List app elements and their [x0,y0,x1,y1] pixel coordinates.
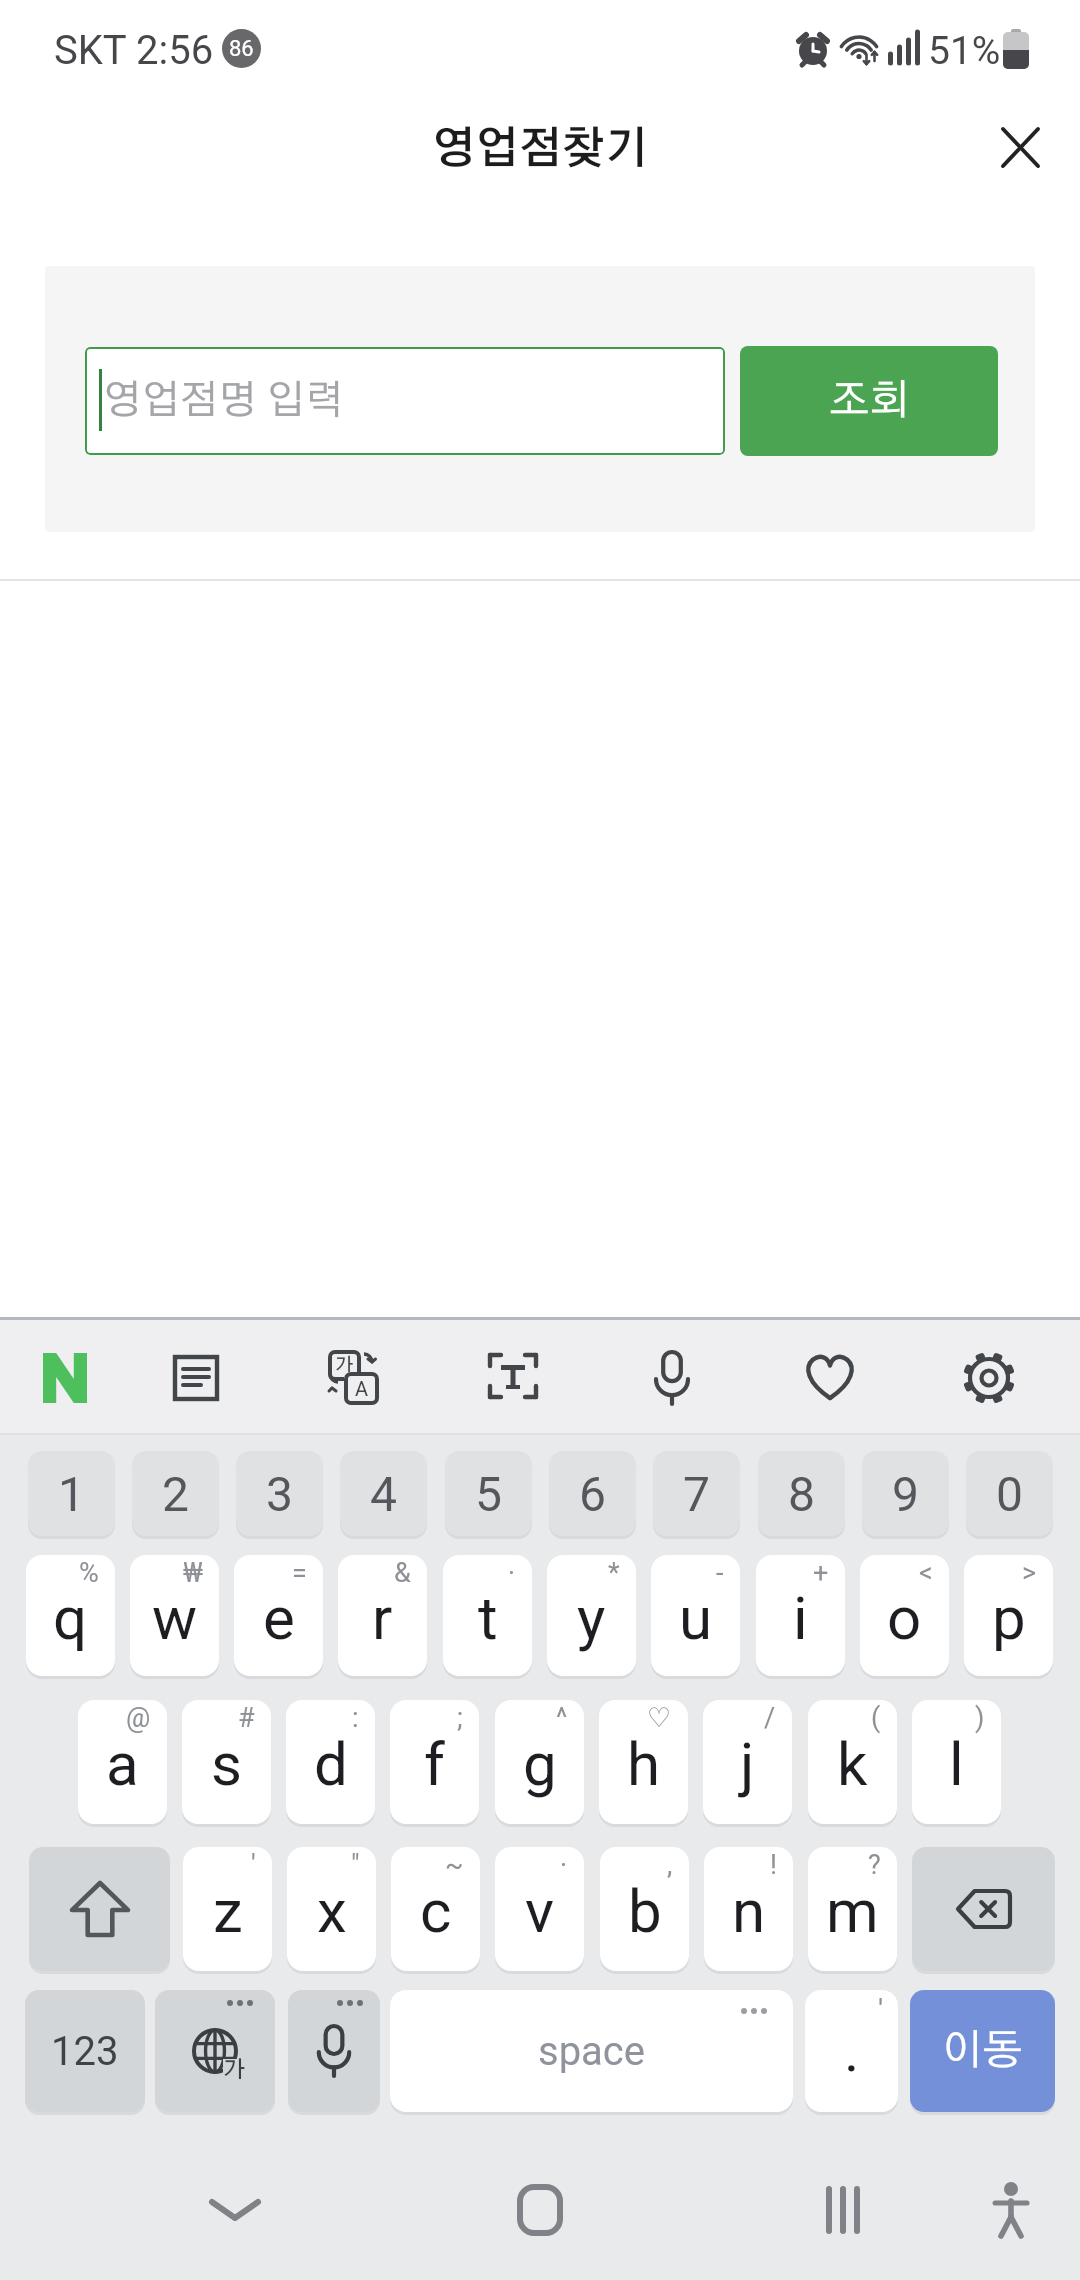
button[interactable]: 영업점명 입력 [85,347,725,455]
staticText: 영업점찾기 [432,128,649,172]
button[interactable] [29,1847,170,1971]
button[interactable]: n [704,1847,793,1971]
staticText: ' [251,1849,256,1881]
button[interactable]: 3 [236,1451,323,1536]
staticText: k [837,1729,868,1799]
button[interactable] [497,2175,583,2245]
button[interactable]: d [286,1700,375,1824]
staticText: 5 [475,1466,502,1522]
button[interactable]: x [287,1847,376,1971]
staticText: d [314,1729,348,1799]
staticText: = [292,1557,307,1589]
staticText: > [1022,1557,1037,1589]
staticText: e [263,1583,295,1653]
button[interactable]: c [391,1847,480,1971]
staticText: v [525,1876,555,1946]
button[interactable]: 2 [132,1451,219,1536]
button[interactable]: z [183,1847,272,1971]
button[interactable]: i [756,1555,845,1676]
staticText: # [238,1702,255,1734]
button[interactable] [985,112,1057,184]
staticText: p [992,1583,1026,1653]
button[interactable] [165,1347,227,1409]
button[interactable]: 조회 [740,346,998,456]
button[interactable]: 가 [155,1990,275,2112]
staticText: o [887,1583,922,1653]
button[interactable]: y [547,1555,636,1676]
button[interactable]: t [443,1555,532,1676]
button[interactable] [288,1990,380,2112]
button[interactable]: 6 [549,1451,636,1536]
staticText: SKT [54,27,127,74]
button[interactable]: v [495,1847,584,1971]
button[interactable]: 9 [862,1451,949,1536]
staticText: g [523,1729,557,1799]
staticText: 4 [370,1466,397,1522]
staticText: , [667,1849,673,1881]
button[interactable]: b [600,1847,689,1971]
staticText: & [394,1557,411,1589]
staticText: ; [457,1702,463,1734]
staticText: space [538,2028,646,2075]
button[interactable] [799,1347,861,1409]
staticText: c [420,1876,452,1946]
button[interactable]: m [808,1847,897,1971]
button[interactable]: a [78,1700,167,1824]
staticText: 7 [683,1466,710,1522]
button[interactable]: 1 [28,1451,115,1536]
button[interactable]: e [234,1555,323,1676]
staticText: 123 [51,2028,119,2075]
button[interactable]: k [808,1700,897,1824]
button[interactable]: 7 [653,1451,740,1536]
button[interactable]: l [912,1700,1001,1824]
staticText: 가 [335,1356,354,1375]
button[interactable] [192,2180,278,2240]
button[interactable] [482,1347,544,1409]
staticText: u [679,1583,713,1653]
button[interactable] [34,1347,96,1409]
button[interactable]: o [860,1555,949,1676]
staticText: - [716,1557,724,1589]
button[interactable]: q [26,1555,115,1676]
staticText: 86 [229,36,254,62]
button[interactable]: p [964,1555,1053,1676]
staticText: r [372,1583,393,1653]
staticText: 2:56 [136,27,214,74]
button[interactable]: 8 [758,1451,845,1536]
button[interactable] [975,2175,1047,2245]
staticText: ) [975,1702,985,1734]
button[interactable]: f [390,1700,479,1824]
staticText: y [577,1583,606,1653]
staticText: ( [871,1702,881,1734]
staticText: : [352,1702,359,1734]
staticText: 영업점명 입력 [103,381,344,421]
button[interactable]: u [651,1555,740,1676]
button[interactable]: s [182,1700,271,1824]
button[interactable] [912,1847,1055,1971]
button[interactable]: space [390,1990,793,2112]
button[interactable]: g [495,1700,584,1824]
button[interactable] [800,2175,886,2245]
button[interactable] [958,1347,1020,1409]
button[interactable]: h [599,1700,688,1824]
button[interactable]: 가 [323,1347,385,1409]
staticText: 6 [579,1466,606,1522]
button[interactable] [641,1347,703,1409]
button[interactable]: j [703,1700,792,1824]
staticText: ♡ [647,1702,672,1733]
staticText: / [764,1702,776,1734]
staticText: 조회 [829,380,910,422]
button[interactable]: 123 [25,1990,145,2112]
staticText: 2 [162,1466,189,1522]
staticText: ! [770,1849,777,1881]
button[interactable]: . [805,1990,898,2112]
button[interactable]: 이동 [910,1990,1055,2112]
button[interactable]: w [130,1555,219,1676]
staticText: l [949,1729,964,1799]
button[interactable]: 5 [445,1451,532,1536]
staticText: 9 [892,1466,919,1522]
staticText: b [628,1876,662,1946]
button[interactable]: 0 [966,1451,1053,1536]
button[interactable]: r [338,1555,427,1676]
button[interactable]: 4 [340,1451,427,1536]
